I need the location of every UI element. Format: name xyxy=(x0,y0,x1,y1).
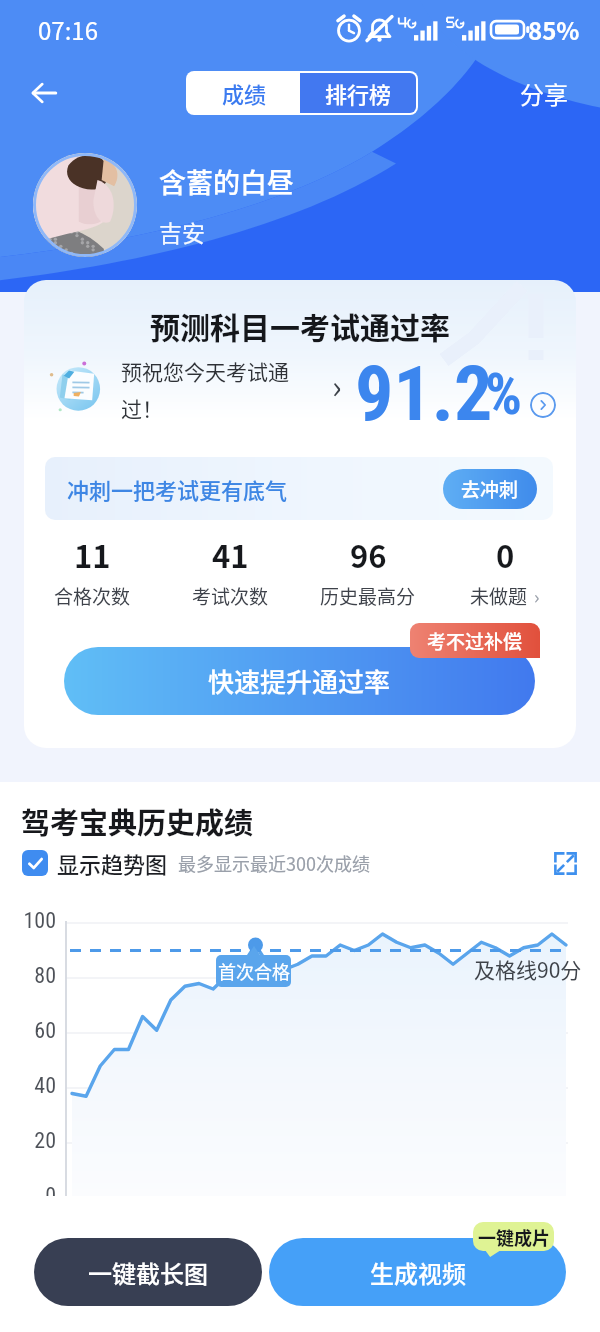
button[interactable]: Fullscreen xyxy=(548,846,582,880)
staticText: 96 xyxy=(350,532,387,577)
staticText: 100 xyxy=(4,908,56,934)
button[interactable]: 冲刺一把考试更有底气 xyxy=(45,457,553,520)
staticText: 一键成片 xyxy=(478,1224,550,1250)
button[interactable]: 11 xyxy=(32,532,152,610)
staticText: 预祝您今天考试通过！ xyxy=(121,356,299,423)
staticText: 快速提升通过率 xyxy=(208,662,391,700)
button[interactable]: 一键截长图 xyxy=(34,1238,262,1306)
staticText: 0 xyxy=(4,1183,56,1196)
staticText: 11 xyxy=(74,532,111,577)
staticText: 0 xyxy=(496,532,515,577)
button[interactable]: 41 xyxy=(170,532,290,610)
button[interactable]: 排行榜 xyxy=(300,73,416,113)
staticText: 及格线90分 xyxy=(474,954,582,984)
staticText: 考不过补偿 xyxy=(427,627,523,655)
button[interactable]: 分享 xyxy=(508,66,580,121)
staticText: 显示趋势图 xyxy=(57,847,168,879)
staticText: 生成视频 xyxy=(370,1255,466,1290)
staticText: 20 xyxy=(4,1128,56,1154)
staticText: 未做题 xyxy=(470,582,528,610)
staticText: 吉安 xyxy=(159,215,205,248)
button[interactable]: 显示趋势图 xyxy=(22,847,168,879)
button[interactable]: 考不过补偿 xyxy=(410,623,540,658)
staticText: › xyxy=(332,362,342,408)
button[interactable]: › xyxy=(330,348,560,426)
staticText: 60 xyxy=(4,1018,56,1044)
staticText: 首次合格 xyxy=(218,958,290,984)
staticText: 分享 xyxy=(520,76,568,111)
staticText: 07:16 xyxy=(38,12,98,47)
staticText: 合格次数 xyxy=(54,582,131,610)
staticText: 一键截长图 xyxy=(88,1255,208,1290)
button[interactable]: Back xyxy=(18,67,70,119)
staticText: 冲刺一把考试更有底气 xyxy=(67,473,288,505)
staticText: 41 xyxy=(212,532,249,577)
button[interactable]: 一键成片 xyxy=(473,1222,554,1258)
staticText: › xyxy=(534,583,540,609)
staticText: 驾考宝典历史成绩 xyxy=(21,800,254,842)
button[interactable]: 0 xyxy=(445,532,565,610)
staticText: 最多显示最近300次成绩 xyxy=(178,850,370,876)
staticText: 91.2 xyxy=(355,349,493,427)
staticText: % xyxy=(485,360,523,428)
button[interactable]: 成绩 xyxy=(188,73,300,113)
staticText: 历史最高分 xyxy=(320,582,416,610)
staticText: 排行榜 xyxy=(325,77,392,109)
button[interactable]: 生成视频 xyxy=(269,1238,566,1306)
button[interactable]: Profile photo xyxy=(33,153,137,257)
staticText: 考试次数 xyxy=(192,582,269,610)
staticText: 预测科目一考试通过率 xyxy=(24,304,576,347)
button[interactable]: 快速提升通过率 xyxy=(64,647,535,715)
staticText: 去冲刺 xyxy=(461,475,519,503)
button[interactable]: 96 xyxy=(308,532,428,610)
staticText: 85% xyxy=(528,12,580,47)
staticText: 80 xyxy=(4,963,56,989)
button[interactable]: 首次合格 xyxy=(216,955,291,987)
staticText: 40 xyxy=(4,1073,56,1099)
staticText: 含蓄的白昼 xyxy=(159,162,294,201)
staticText: 成绩 xyxy=(222,77,267,109)
